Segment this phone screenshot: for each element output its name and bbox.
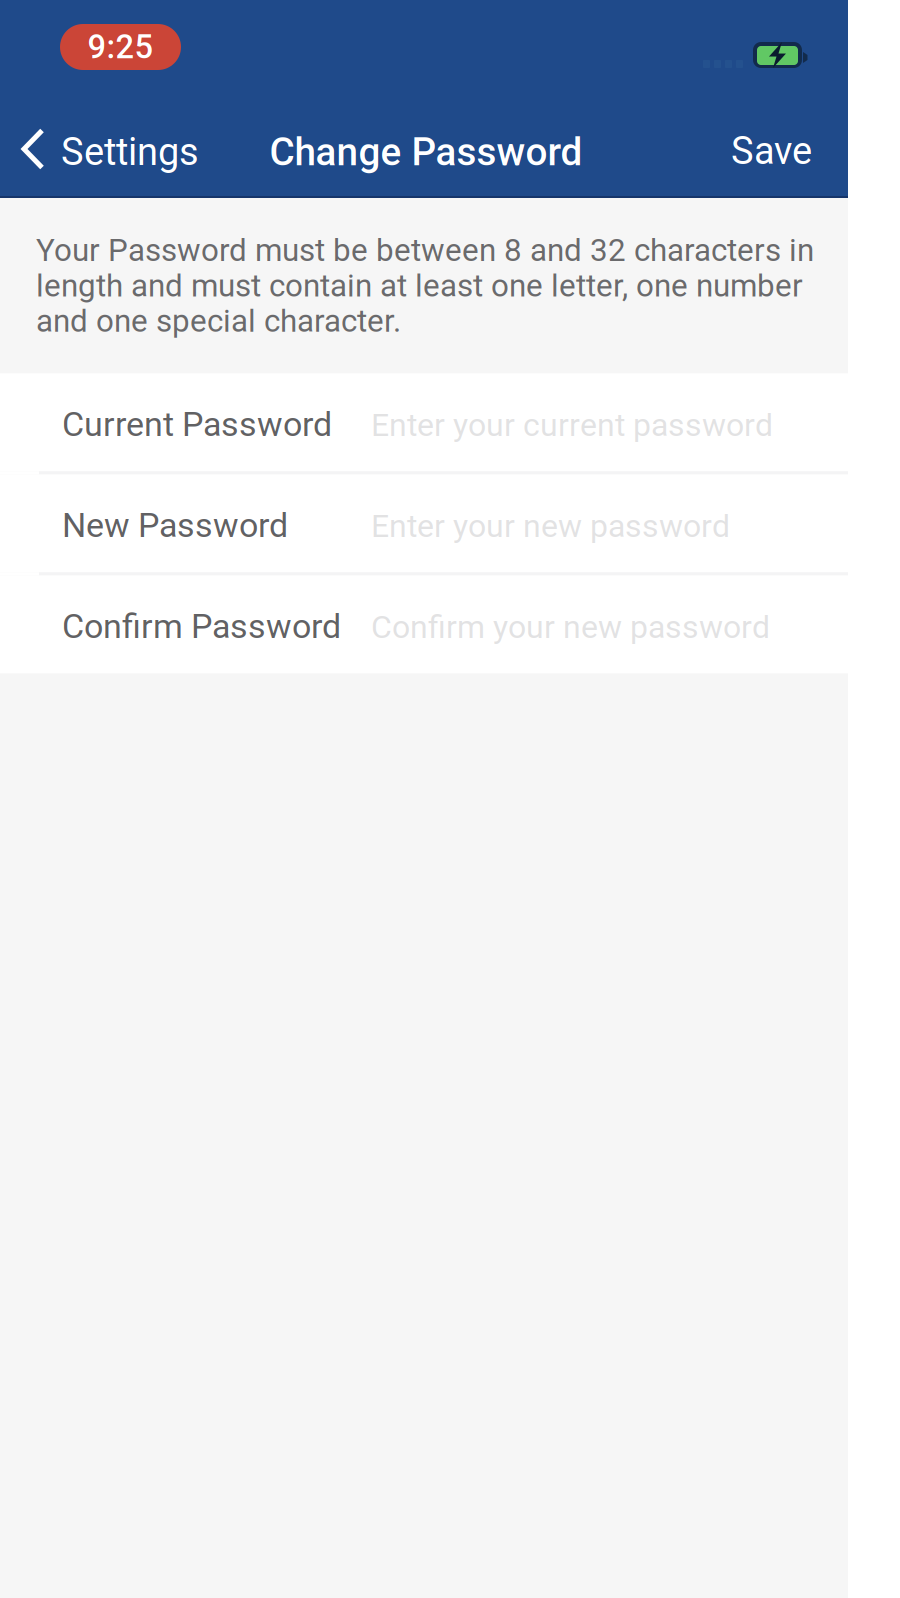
- staticText: Enter your current password: [371, 406, 773, 444]
- staticText: Confirm your new password: [371, 608, 770, 646]
- button[interactable]: Current Password: [0, 373, 848, 471]
- staticText: Settings: [61, 130, 199, 174]
- staticText: Current Password: [62, 404, 332, 444]
- staticText: Change Password: [269, 129, 582, 175]
- button[interactable]: Save: [711, 100, 848, 196]
- button[interactable]: New Password: [0, 474, 848, 572]
- staticText: Save: [731, 129, 812, 173]
- button[interactable]: Settings: [0, 100, 213, 196]
- staticText: New Password: [62, 505, 288, 545]
- staticText: Confirm Password: [62, 606, 341, 646]
- staticText: 9:25: [87, 28, 153, 66]
- staticText: Enter your new password: [371, 507, 730, 545]
- staticText: Your Password must be between 8 and 32 c…: [36, 232, 814, 339]
- button[interactable]: Confirm Password: [0, 575, 848, 673]
